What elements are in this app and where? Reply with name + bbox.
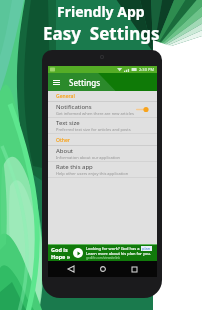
button[interactable]: Open navigation menu (48, 73, 157, 91)
staticText: Get informed when there are new articles (56, 111, 134, 116)
staticText: godlife.com/viewsitelink (86, 256, 121, 260)
staticText: General (56, 93, 75, 100)
staticText: Hope » (51, 253, 71, 260)
staticText: Notifications (56, 103, 92, 111)
button[interactable]: Notifications (48, 102, 157, 117)
other: Open navigation menu (53, 80, 60, 85)
button[interactable]: Back (62, 261, 80, 277)
button[interactable]: Rate this app (48, 162, 157, 177)
staticText: God is (51, 246, 68, 253)
button[interactable]: Text size (48, 118, 157, 133)
staticText: Rate this app (56, 163, 93, 171)
button[interactable]: God is (48, 244, 157, 261)
button[interactable]: Home (94, 261, 112, 277)
staticText: Easy Settings (43, 22, 160, 45)
staticText: Preferred text size for articles and pos… (56, 127, 131, 132)
button[interactable]: About (48, 146, 157, 161)
staticText: 2:30 PM (139, 67, 155, 72)
staticText: About (56, 147, 74, 155)
staticText: Other (56, 137, 70, 144)
staticText: Help other users enjoy this application (56, 171, 129, 176)
staticText: Text size (56, 119, 80, 127)
button[interactable]: Recent apps (125, 261, 143, 277)
staticText: Learn more about his plan for you. (86, 251, 152, 256)
staticText: Settings (69, 77, 101, 88)
staticText: Looking for work? God has a (86, 246, 141, 251)
staticText: Friendly App (57, 2, 145, 21)
staticText: plan (142, 246, 151, 251)
staticText: Information about our application (56, 155, 121, 160)
